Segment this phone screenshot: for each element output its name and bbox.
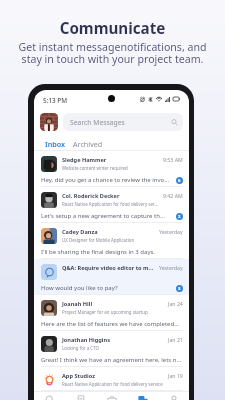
staticText: Inbox [45,139,66,149]
staticText: Cadey Danza [62,228,98,236]
button[interactable]: Cadey Danza [34,223,189,259]
staticText: 5:13 PM [43,96,68,105]
staticText: Jan 21 [168,336,183,343]
button[interactable]: Sledge Hammer [34,151,189,187]
staticText: Yesterday [159,228,183,235]
staticText: Yesterday [159,264,183,271]
staticText: React Native Application for food delive… [62,201,160,207]
button[interactable]: Jonathan Higgins [34,331,189,367]
staticText: Jan 24 [168,300,183,307]
button[interactable]: Search Messages [63,113,183,131]
staticText: 6 [178,178,181,184]
staticText: Hey, did you get a chance to review the … [41,176,173,184]
button[interactable]: Messages [127,392,158,400]
button[interactable]: Col. Roderick Decker [34,187,189,223]
button[interactable]: Inbox [40,135,70,151]
staticText: Communicate [0,18,225,39]
button[interactable]: Jobs [96,392,127,400]
staticText: Here are the list of features we have co… [41,320,183,328]
button[interactable]: Archived [70,135,106,151]
staticText: Get instant messagenotifications, and st… [0,40,225,66]
button[interactable]: Q&A: Require video editor to make a... [34,259,189,295]
button[interactable]: Joanah Hill [34,295,189,331]
staticText: Joanah Hill [62,300,93,308]
staticText: Project Manager for an upcoming startup [62,309,148,315]
staticText: React Native Application for food delive… [62,381,163,387]
staticText: Col. Roderick Decker [62,192,120,200]
button[interactable]: App Studioz [34,367,189,391]
staticText: Sledge Hammer [62,156,107,164]
staticText: UX Designer for Mobile Application [62,237,135,243]
button[interactable]: Search [34,392,65,400]
staticText: Jonathan Higgins [62,336,110,344]
staticText: How would you like to pay? [41,284,173,292]
staticText: App Studioz [62,372,95,380]
staticText: 3 [178,286,181,292]
staticText: Website content writer required [62,165,128,171]
staticText: 2 [178,214,181,220]
staticText: I'll be sharing the final designs in 3 d… [41,248,183,256]
staticText: 9:42 AM [163,192,183,199]
staticText: Archived [73,139,103,149]
staticText: Search Messages [70,118,125,127]
staticText: 9:53 AM [163,156,183,163]
staticText: Great! I think we have an agreement here… [41,356,183,364]
staticText: Looking for a CTO [62,345,99,351]
staticText: Q&A: Require video editor to make a... [62,264,156,272]
button[interactable]: Profile [158,392,189,400]
button[interactable]: Documents [65,392,96,400]
button[interactable]: Profile [40,113,58,131]
staticText: Jan 19 [168,372,183,379]
staticText: Let's setup a new agreement to capture t… [41,212,173,220]
